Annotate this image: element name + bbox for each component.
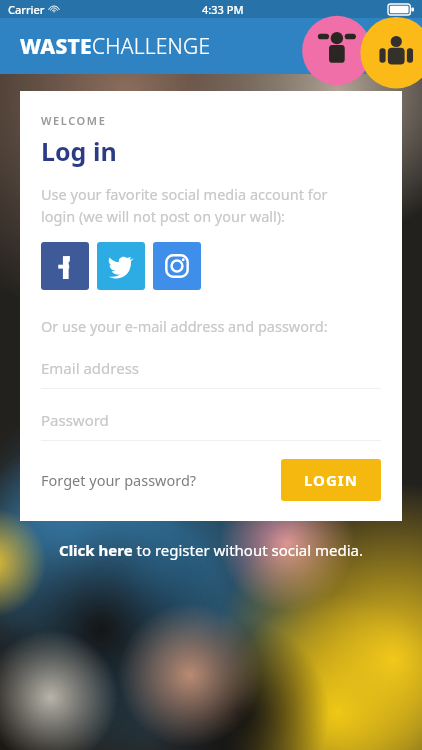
button[interactable]: LOGIN	[281, 459, 381, 501]
button[interactable]: Click here to register without social me…	[0, 540, 422, 560]
staticText: Click here to register without social me…	[59, 540, 364, 560]
staticText: Forget your password?	[41, 470, 197, 490]
staticText: 4:33 PM	[202, 2, 244, 17]
button[interactable]: Password	[41, 410, 381, 441]
staticText: LOGIN	[304, 470, 358, 490]
staticText: Carrier	[8, 2, 45, 17]
staticText: WASTE	[20, 32, 92, 61]
button[interactable]: WASTE	[20, 32, 211, 61]
staticText: CHALLENGE	[92, 32, 211, 61]
staticText: Password	[41, 410, 109, 430]
button[interactable]: Forget your password?	[41, 466, 197, 494]
button[interactable]: Sign in with Instagram	[153, 242, 201, 290]
staticText: Log in	[41, 134, 117, 168]
button[interactable]: Email address	[41, 358, 381, 389]
staticText: Use your favorite social media account f…	[41, 184, 328, 226]
button[interactable]: Sign in with Twitter	[97, 242, 145, 290]
staticText: Or use your e-mail address and password:	[41, 316, 328, 336]
staticText: Email address	[41, 358, 140, 378]
button[interactable]: Sign in with Facebook	[41, 242, 89, 290]
staticText: WELCOME	[41, 113, 107, 128]
